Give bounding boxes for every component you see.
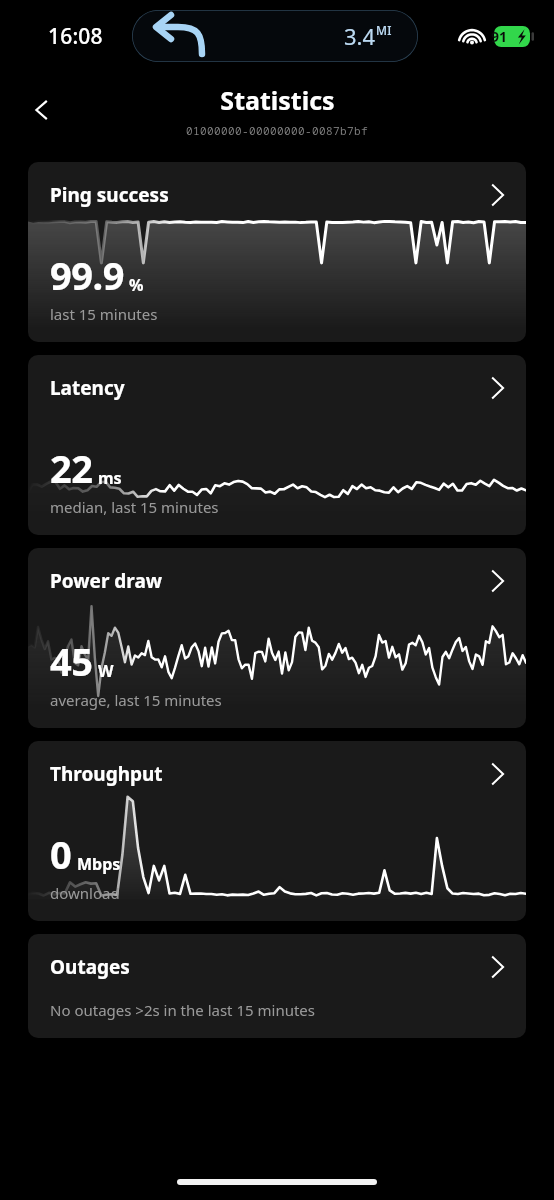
button[interactable]: Power draw	[28, 548, 526, 728]
staticText: Mbps	[77, 853, 121, 875]
staticText: W	[98, 660, 114, 682]
button[interactable]: Outages	[28, 934, 526, 1038]
button[interactable]: Back	[20, 88, 64, 132]
staticText: Ping success	[50, 182, 169, 208]
button[interactable]: Ping success	[28, 162, 526, 342]
staticText: median, last 15 minutes	[50, 497, 219, 517]
staticText: 45	[50, 635, 93, 687]
staticText: last 15 minutes	[50, 304, 158, 324]
staticText: average, last 15 minutes	[50, 690, 222, 710]
staticText: Latency	[50, 375, 125, 401]
staticText: ms	[98, 467, 122, 489]
staticText: No outages >2s in the last 15 minutes	[50, 1000, 315, 1020]
button[interactable]: Latency	[28, 355, 526, 535]
staticText: Statistics	[220, 83, 335, 117]
staticText: download	[50, 883, 120, 903]
staticText: 3.4	[344, 21, 376, 51]
staticText: 99.9	[50, 249, 124, 301]
staticText: Outages	[50, 954, 130, 980]
staticText: MI	[376, 22, 392, 38]
staticText: 01000000-00000000-0087b7bf	[186, 123, 368, 138]
button[interactable]: Throughput	[28, 741, 526, 921]
staticText: Power draw	[50, 568, 163, 594]
button[interactable]: Navigation, 3.4 miles	[132, 10, 418, 62]
staticText: 22	[50, 442, 93, 494]
staticText: 91	[491, 27, 508, 46]
staticText: 0	[50, 828, 72, 880]
staticText: 16:08	[48, 22, 103, 51]
staticText: %	[129, 274, 144, 296]
staticText: Throughput	[50, 761, 163, 787]
